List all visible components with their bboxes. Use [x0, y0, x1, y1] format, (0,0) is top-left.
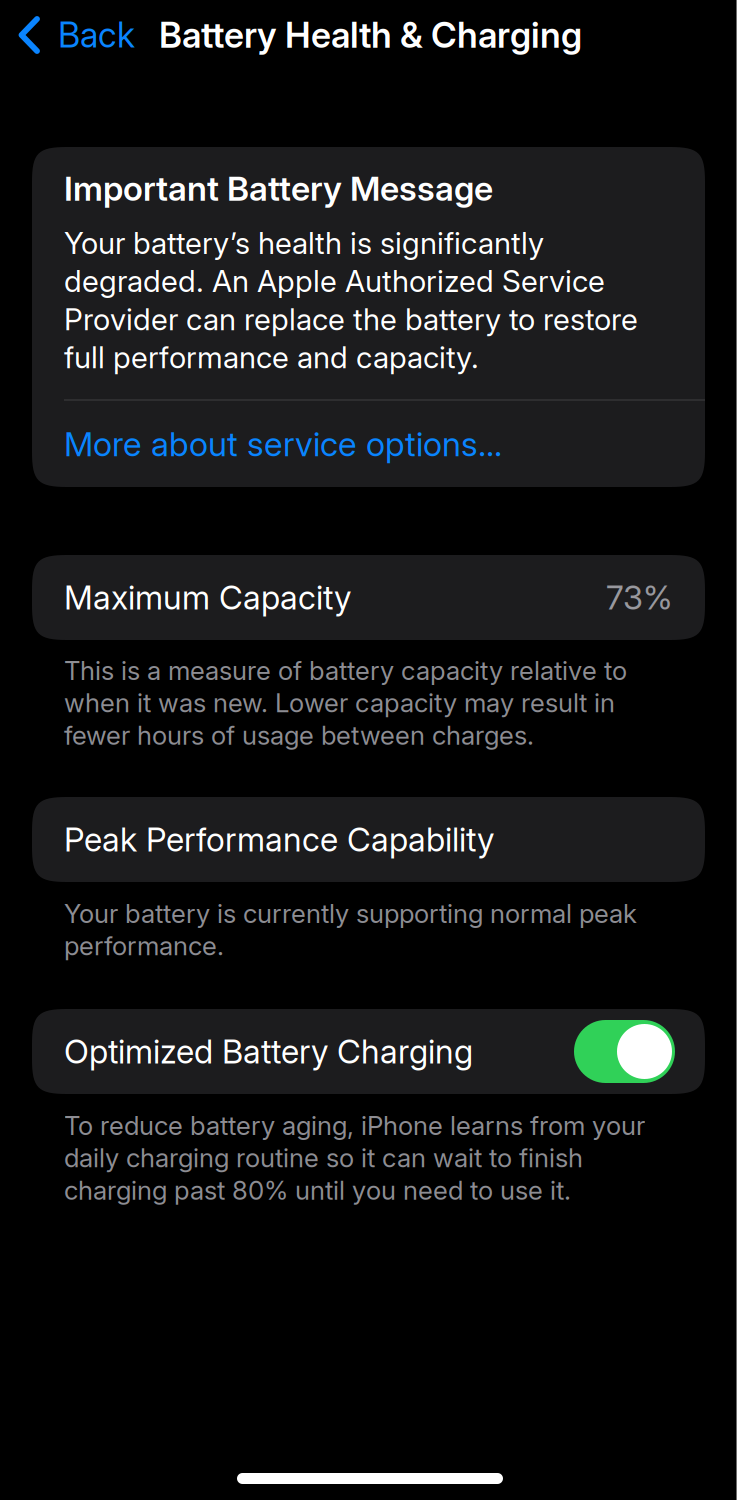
- staticText: Your battery’s health is significantly d…: [64, 225, 638, 376]
- staticText: Optimized Battery Charging: [64, 1032, 473, 1071]
- button[interactable]: Back: [0, 0, 145, 70]
- staticText: Maximum Capacity: [64, 578, 351, 617]
- button[interactable]: Optimized Battery Charging: [574, 1020, 675, 1083]
- staticText: Your battery is currently supporting nor…: [64, 898, 637, 962]
- button[interactable]: Peak Performance Capability: [32, 797, 705, 882]
- staticText: Battery Health & Charging: [159, 14, 582, 56]
- staticText: Back: [58, 14, 135, 56]
- button[interactable]: Maximum Capacity: [32, 555, 705, 640]
- button[interactable]: More about service options...: [64, 401, 705, 487]
- staticText: Peak Performance Capability: [64, 820, 494, 859]
- staticText: 73%: [606, 578, 673, 617]
- staticText: Important Battery Message: [64, 168, 493, 209]
- staticText: This is a measure of battery capacity re…: [64, 655, 627, 751]
- staticText: More about service options...: [64, 424, 502, 464]
- staticText: To reduce battery aging, iPhone learns f…: [64, 1110, 645, 1206]
